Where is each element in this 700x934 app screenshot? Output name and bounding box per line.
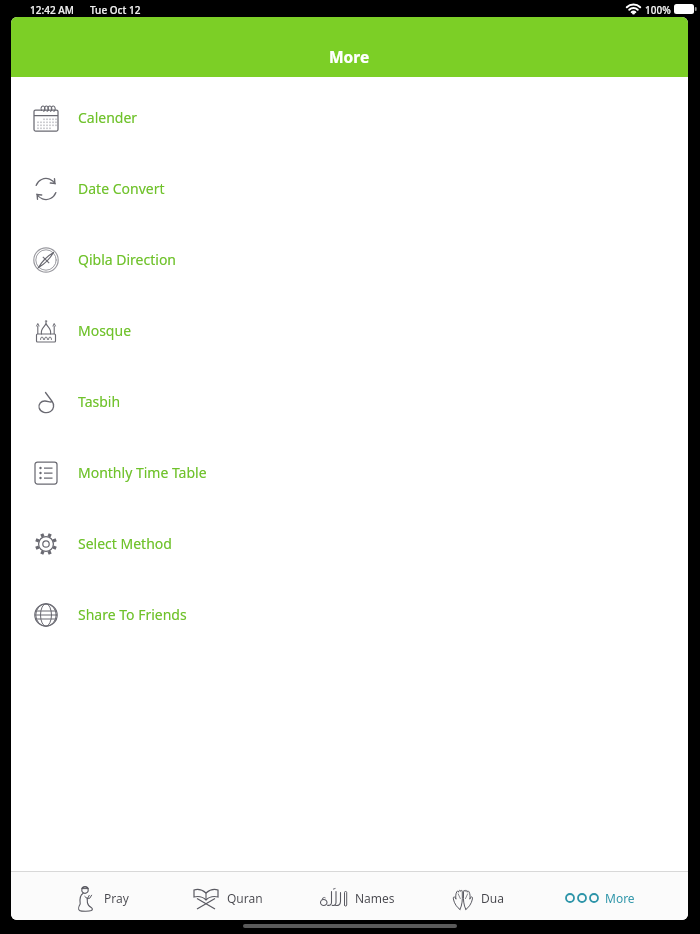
staticText: Names [355,890,395,906]
button[interactable]: Pray [74,884,129,912]
staticText: More [329,46,370,67]
staticText: Tue Oct 12 [90,3,141,17]
button[interactable]: Qibla Direction [11,224,688,295]
button[interactable]: Quran [191,885,263,911]
staticText: Dua [481,890,504,906]
staticText: Pray [104,890,129,906]
staticText: Share To Friends [78,605,187,624]
staticText: Calender [78,108,138,127]
button[interactable]: Select Method [11,508,688,579]
button[interactable]: Names [319,888,395,908]
staticText: 12:42 AM [30,3,74,17]
button[interactable]: Monthly Time Table [11,437,688,508]
staticText: Monthly Time Table [78,463,207,482]
staticText: Mosque [78,321,132,340]
button[interactable]: Share To Friends [11,579,688,650]
button[interactable]: Tasbih [11,366,688,437]
button[interactable]: Dua [449,886,504,910]
button[interactable]: Date Convert [11,153,688,224]
button[interactable]: Mosque [11,295,688,366]
staticText: Quran [227,890,263,906]
staticText: More [605,890,635,906]
button[interactable]: Calender [11,82,688,153]
staticText: Select Method [78,534,172,553]
button[interactable]: More [565,890,635,906]
staticText: Date Convert [78,179,165,198]
staticText: 100% [645,3,671,17]
staticText: Tasbih [78,392,121,411]
staticText: Qibla Direction [78,250,176,269]
